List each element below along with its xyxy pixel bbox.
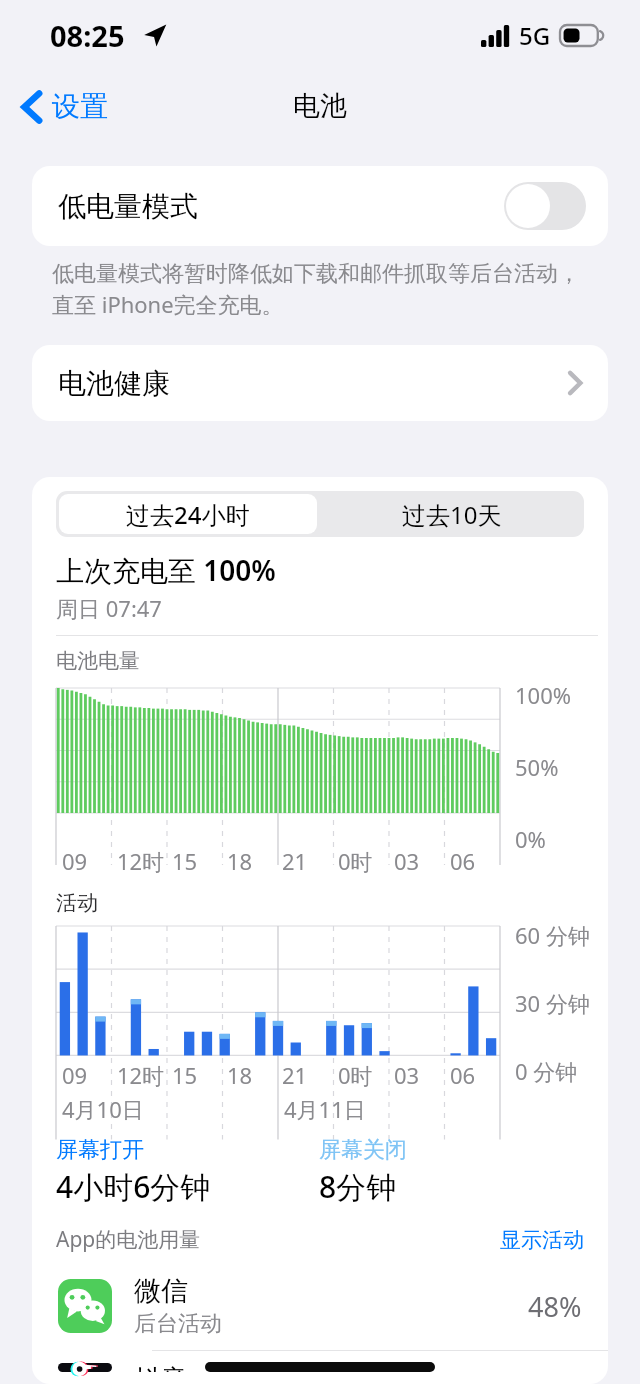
staticText: 屏幕关闭 [319, 1136, 407, 1164]
staticText: 5G [519, 19, 551, 52]
staticText: 48% [528, 1288, 582, 1325]
staticText: 电池 [293, 89, 347, 123]
staticText: 后台活动 [134, 1310, 222, 1338]
staticText: 活动 [56, 890, 98, 916]
staticText: 06 [450, 1060, 476, 1090]
staticText: 微信 [134, 1274, 188, 1308]
staticText: 30 分钟 [515, 988, 590, 1018]
staticText: 屏幕打开 [56, 1136, 144, 1164]
staticText: 21 [282, 1060, 308, 1090]
staticText: 8分钟 [319, 1166, 397, 1207]
staticText: 03 [394, 1060, 420, 1090]
staticText: 60 分钟 [515, 920, 590, 950]
staticText: 低电量模式将暂时降低如下载和邮件抓取等后台活动，直至 iPhone完全充电。 [52, 260, 600, 319]
staticText: 08:25 [50, 16, 125, 55]
staticText: 15 [172, 846, 198, 876]
staticText: 电池电量 [56, 648, 140, 674]
button[interactable]: 低电量模式 [32, 166, 608, 246]
staticText: 显示活动 [500, 1227, 584, 1253]
button[interactable]: 微信 [32, 1262, 608, 1350]
button[interactable]: 电池健康 [32, 345, 608, 421]
staticText: 过去10天 [402, 498, 502, 531]
staticText: 4月11日 [284, 1094, 366, 1124]
staticText: 09 [62, 1060, 88, 1090]
staticText: 0 分钟 [515, 1056, 578, 1086]
staticText: 15 [172, 1060, 198, 1090]
staticText: 09 [62, 846, 88, 876]
staticText: 21 [282, 846, 308, 876]
button[interactable]: 过去24小时 [59, 494, 317, 534]
staticText: 上次充电至 100% [56, 551, 276, 589]
staticText: 12时 [117, 1060, 165, 1090]
button[interactable]: 抖音 [32, 1351, 608, 1384]
staticText: 12时 [117, 846, 165, 876]
staticText: App的电池用量 [56, 1225, 201, 1254]
staticText: 设置 [52, 89, 108, 124]
staticText: 抖音 [134, 1363, 188, 1372]
staticText: 03 [394, 846, 420, 876]
staticText: 周日 07:47 [56, 593, 162, 623]
staticText: 低电量模式 [58, 189, 198, 224]
staticText: 100% [515, 680, 572, 710]
staticText: 50% [515, 752, 559, 782]
button[interactable]: 显示活动 [500, 1227, 584, 1253]
staticText: 0% [515, 824, 546, 854]
staticText: 06 [450, 846, 476, 876]
staticText: 4小时6分钟 [56, 1166, 211, 1207]
button[interactable]: 过去10天 [320, 491, 584, 537]
staticText: 18 [227, 846, 253, 876]
staticText: 0时 [338, 1060, 373, 1090]
staticText: 18 [227, 1060, 253, 1090]
staticText: 0时 [338, 846, 373, 876]
staticText: 4月10日 [62, 1094, 144, 1124]
button[interactable]: 设置 [0, 83, 122, 130]
staticText: 电池健康 [58, 366, 170, 401]
button[interactable]: Low Power Mode toggle [504, 182, 586, 230]
staticText: 过去24小时 [126, 498, 250, 531]
